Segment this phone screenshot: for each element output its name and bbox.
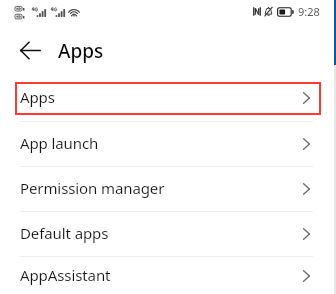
button[interactable]: Back [12,32,46,66]
staticText: AppAssistant [20,265,111,285]
button[interactable]: Default apps [0,212,336,256]
button[interactable]: Permission manager [0,167,336,211]
staticText: Default apps [20,223,109,243]
staticText: Apps [20,87,55,107]
staticText: Apps [58,38,104,64]
staticText: App launch [20,133,99,153]
button[interactable]: AppAssistant [0,257,336,294]
staticText: Permission manager [20,178,165,198]
button[interactable]: Apps [0,75,336,121]
button[interactable]: App launch [0,122,336,166]
staticText: 9:28 [298,4,320,19]
